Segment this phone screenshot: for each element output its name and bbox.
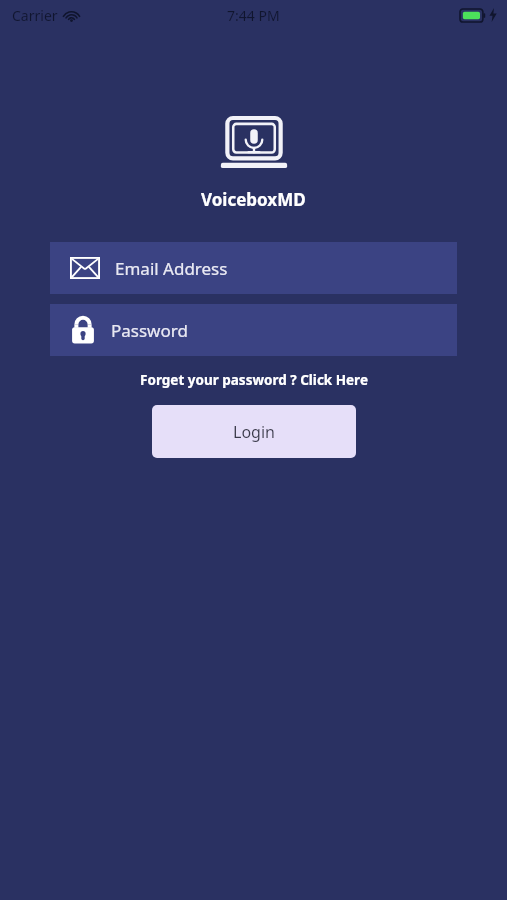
other: VoiceboxMD logo: [218, 118, 290, 174]
button[interactable]: Forget your password ? Click Here: [132, 368, 376, 392]
staticText: VoiceboxMD: [201, 188, 306, 211]
button[interactable]: Email Address: [50, 242, 457, 294]
staticText: Password: [111, 319, 188, 342]
staticText: Login: [233, 421, 275, 443]
staticText: Email Address: [115, 257, 228, 280]
staticText: Forget your password ? Click Here: [140, 371, 368, 389]
button[interactable]: Password: [50, 304, 457, 356]
button[interactable]: Login: [152, 405, 356, 458]
staticText: 7:44 PM: [227, 6, 280, 25]
staticText: Carrier: [12, 6, 58, 25]
